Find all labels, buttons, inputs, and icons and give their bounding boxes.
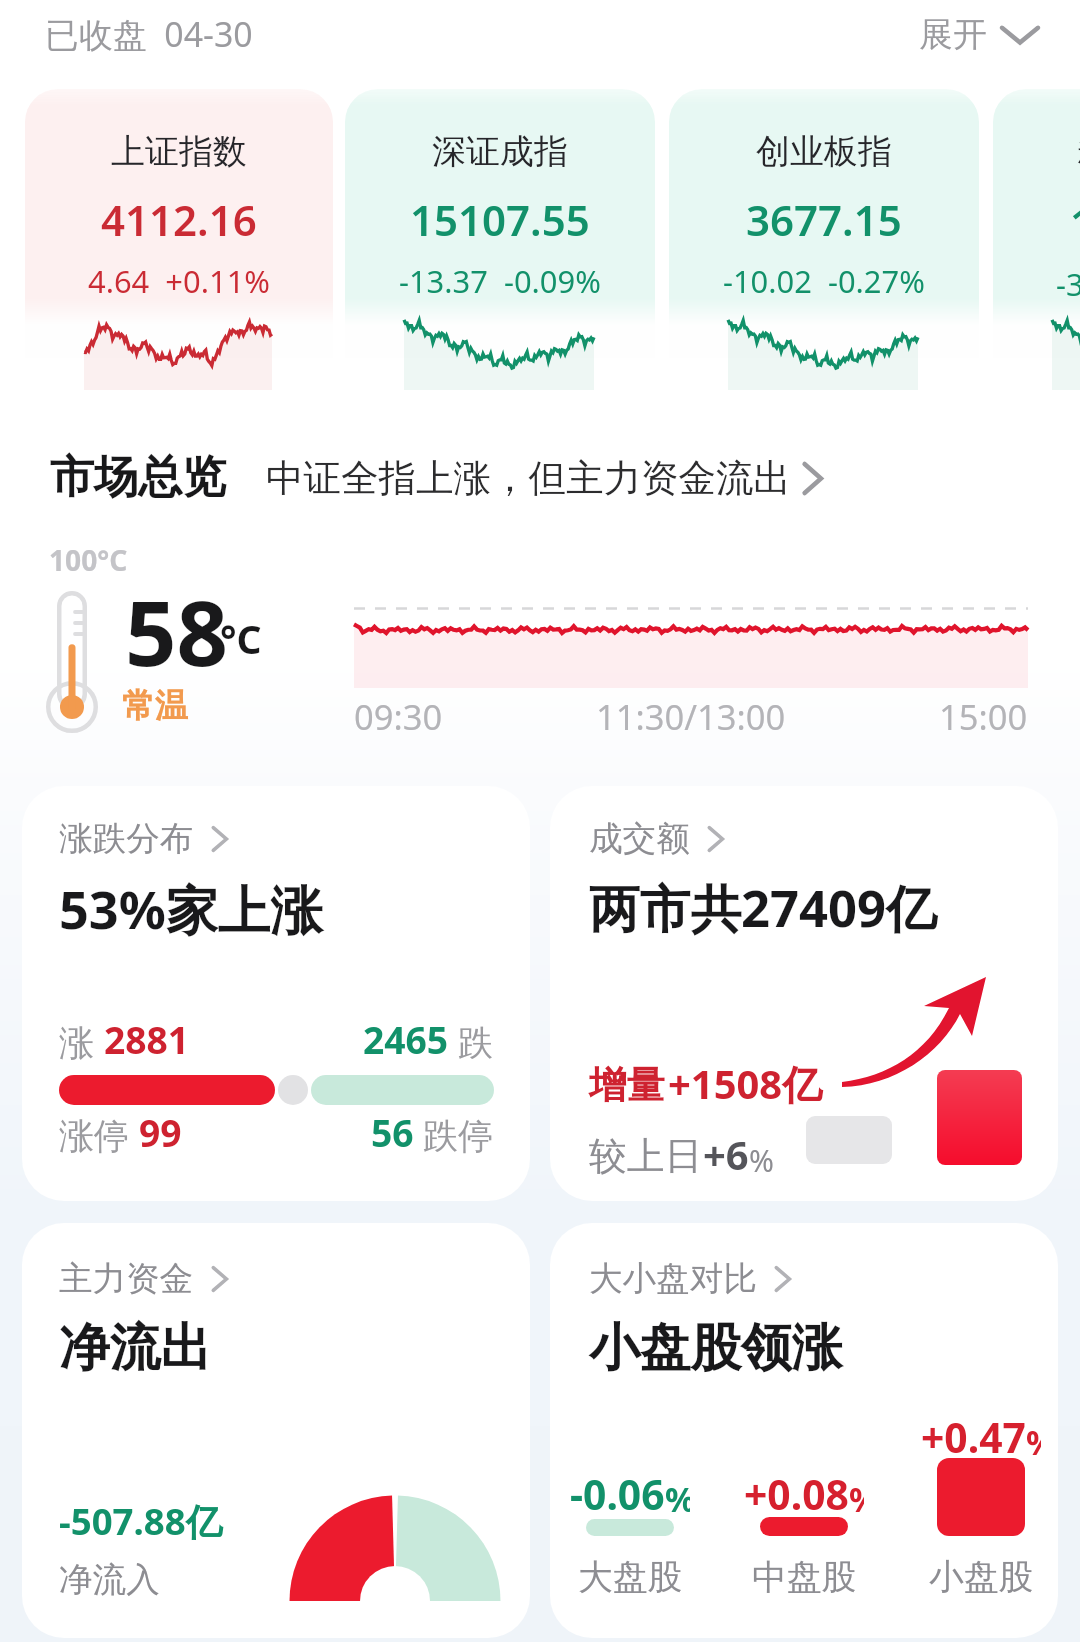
- staticText: 小盘股领涨: [589, 1316, 843, 1380]
- staticText: 中证全指上涨，但主力资金流出: [266, 455, 791, 502]
- staticText: 常温: [122, 685, 188, 727]
- staticText: 跌停: [414, 1110, 494, 1158]
- staticText: -507.88亿: [59, 1496, 223, 1546]
- staticText: %: [1026, 1419, 1041, 1465]
- staticText: 100°C: [49, 541, 128, 579]
- staticText: 涨: [59, 1017, 104, 1065]
- button[interactable]: 大小盘对比: [589, 1258, 791, 1300]
- button[interactable]: 上证指数: [25, 89, 333, 390]
- staticText: 中盘股: [752, 1555, 857, 1599]
- staticText: 58: [125, 570, 228, 693]
- button[interactable]: 大小盘对比: [550, 1223, 1058, 1638]
- staticText: +0.08: [744, 1466, 849, 1522]
- staticText: +0.47: [921, 1409, 1026, 1465]
- staticText: °C: [220, 612, 262, 665]
- staticText: 较上日: [589, 1133, 703, 1181]
- button[interactable]: 市场总览: [50, 450, 1080, 506]
- staticText: 2881: [104, 1014, 190, 1065]
- staticText: 15107.55: [410, 191, 590, 248]
- staticText: 市场总览: [50, 450, 227, 506]
- button[interactable]: 创业板指: [669, 89, 979, 390]
- staticText: 4.64 +0.11%: [88, 260, 270, 302]
- staticText: 涨停: [59, 1110, 139, 1158]
- staticText: 科创50指: [1078, 130, 1080, 176]
- staticText: -10.02 -0.27%: [723, 260, 925, 302]
- staticText: 2465: [363, 1014, 449, 1065]
- staticText: 主力资金: [59, 1258, 194, 1300]
- staticText: 展开: [919, 13, 987, 56]
- staticText: 3677.15: [746, 191, 902, 248]
- staticText: -0.06: [570, 1466, 665, 1522]
- staticText: 已收盘 04-30: [45, 11, 253, 57]
- button[interactable]: 成交额: [550, 786, 1058, 1201]
- staticText: 两市共27409亿: [589, 873, 937, 942]
- button[interactable]: 深证成指: [345, 89, 655, 390]
- staticText: 53%家上涨: [59, 873, 323, 944]
- button[interactable]: 涨跌分布: [22, 786, 530, 1201]
- staticText: 深证成指: [432, 130, 568, 173]
- staticText: 增量: [589, 1062, 665, 1110]
- staticText: +6: [703, 1127, 749, 1181]
- staticText: 大小盘对比: [589, 1258, 757, 1300]
- staticText: 涨跌分布: [59, 818, 194, 860]
- staticText: -3.12 -0.27%: [1056, 263, 1080, 305]
- button[interactable]: 展开: [919, 13, 1038, 56]
- button[interactable]: 成交额: [589, 818, 724, 860]
- button[interactable]: 涨跌分布: [59, 818, 228, 860]
- staticText: %: [749, 1140, 774, 1181]
- staticText: 大盘股: [578, 1555, 683, 1599]
- staticText: 上证指数: [111, 130, 247, 173]
- button[interactable]: 主力资金: [22, 1223, 530, 1638]
- staticText: 11:30/13:00: [596, 693, 786, 740]
- staticText: +1508亿: [668, 1056, 822, 1110]
- staticText: %: [665, 1476, 690, 1522]
- staticText: 4112.16: [101, 191, 257, 248]
- staticText: 跌: [449, 1017, 494, 1065]
- staticText: 15:00: [939, 693, 1028, 740]
- button[interactable]: 主力资金: [59, 1258, 228, 1300]
- staticText: 净流出: [59, 1316, 212, 1380]
- staticText: -13.37 -0.09%: [399, 260, 601, 302]
- staticText: %: [849, 1476, 864, 1522]
- staticText: 净流入: [59, 1559, 160, 1601]
- staticText: 创业板指: [756, 130, 892, 173]
- staticText: 成交额: [589, 818, 690, 860]
- staticText: 99: [139, 1107, 182, 1158]
- staticText: 1129.49: [1070, 194, 1080, 251]
- staticText: 56: [371, 1107, 414, 1158]
- staticText: 小盘股: [929, 1555, 1034, 1599]
- staticText: 09:30: [354, 693, 443, 740]
- button[interactable]: 科创50指: [993, 89, 1080, 390]
